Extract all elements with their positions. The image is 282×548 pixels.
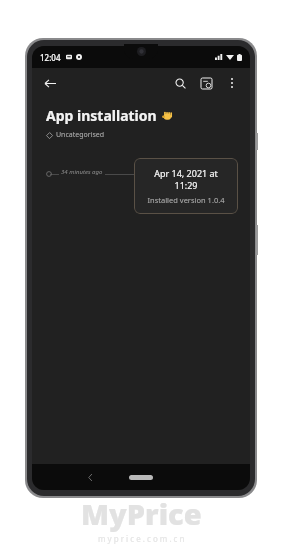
staticText: 34 minutes ago bbox=[61, 168, 103, 176]
staticText: 12:04 bbox=[40, 52, 61, 63]
staticText: Installed version 1.0.4 bbox=[147, 195, 225, 205]
button[interactable]: Back bbox=[38, 71, 62, 95]
button[interactable]: Search bbox=[168, 71, 192, 95]
button[interactable]: Home bbox=[129, 475, 153, 480]
staticText: MyPrice bbox=[81, 494, 202, 533]
staticText: App installation bbox=[46, 106, 157, 125]
button[interactable]: More options bbox=[220, 71, 244, 95]
staticText: Uncategorised bbox=[56, 130, 105, 140]
button[interactable]: Version history bbox=[194, 71, 218, 95]
button[interactable]: Back bbox=[80, 467, 100, 487]
staticText: Apr 14, 2021 at 11:29 bbox=[142, 167, 230, 191]
button[interactable]: Apr 14, 2021 at 11:29 bbox=[134, 158, 238, 214]
staticText: m y p r i c e . c o m . c n bbox=[98, 533, 185, 544]
